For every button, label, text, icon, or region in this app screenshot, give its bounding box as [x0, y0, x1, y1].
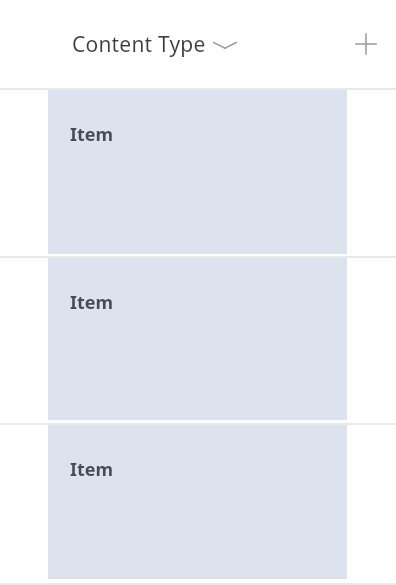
button[interactable]: Add [344, 22, 388, 66]
staticText: Item [70, 122, 114, 147]
staticText: Item [70, 290, 114, 315]
staticText: Content Type [72, 30, 206, 59]
button[interactable]: Item [0, 258, 396, 423]
button[interactable]: Content Type [72, 30, 237, 59]
button[interactable]: Item [0, 90, 396, 256]
button[interactable]: Item [0, 425, 396, 583]
staticText: Item [70, 457, 114, 482]
